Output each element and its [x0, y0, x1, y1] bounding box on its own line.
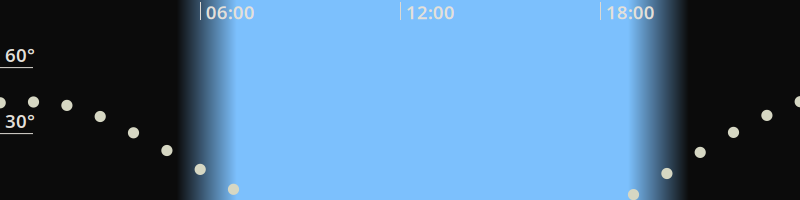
staticText: 12:00 [406, 0, 455, 24]
staticText: 60° [5, 42, 35, 67]
staticText: 18:00 [606, 0, 655, 24]
staticText: 30° [5, 108, 35, 133]
staticText: 06:00 [206, 0, 255, 24]
